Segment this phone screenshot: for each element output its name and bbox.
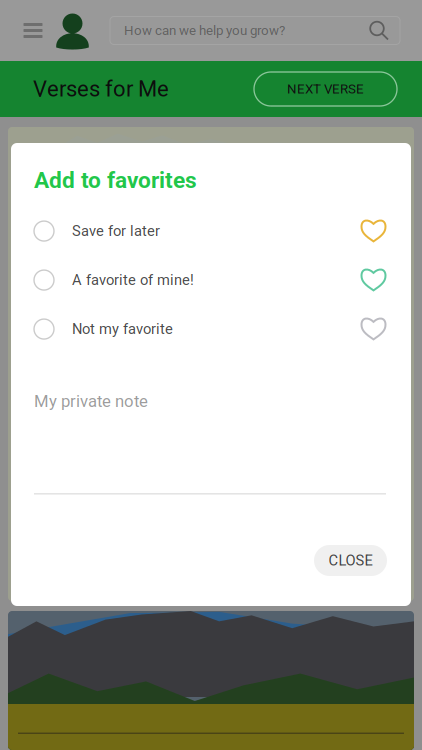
staticText: CLOSE bbox=[328, 552, 372, 569]
staticText: NEXT VERSE bbox=[287, 81, 364, 97]
staticText: How can we help you grow? bbox=[124, 23, 285, 38]
button[interactable]: A favorite of mine! bbox=[11, 256, 411, 305]
button[interactable]: Save for later bbox=[11, 207, 411, 256]
staticText: Save for later bbox=[72, 222, 160, 240]
staticText: Not my favorite bbox=[72, 320, 173, 338]
button[interactable]: Not my favorite bbox=[11, 305, 411, 354]
staticText: Verses for Me bbox=[33, 76, 169, 102]
button[interactable]: Menu bbox=[0, 7, 50, 53]
staticText: A favorite of mine! bbox=[72, 271, 194, 289]
button[interactable]: Account bbox=[50, 7, 95, 53]
staticText: My private note bbox=[34, 392, 148, 411]
button[interactable]: CLOSE bbox=[314, 545, 387, 576]
button[interactable]: NEXT VERSE bbox=[254, 72, 397, 106]
staticText: Add to favorites bbox=[34, 167, 197, 194]
